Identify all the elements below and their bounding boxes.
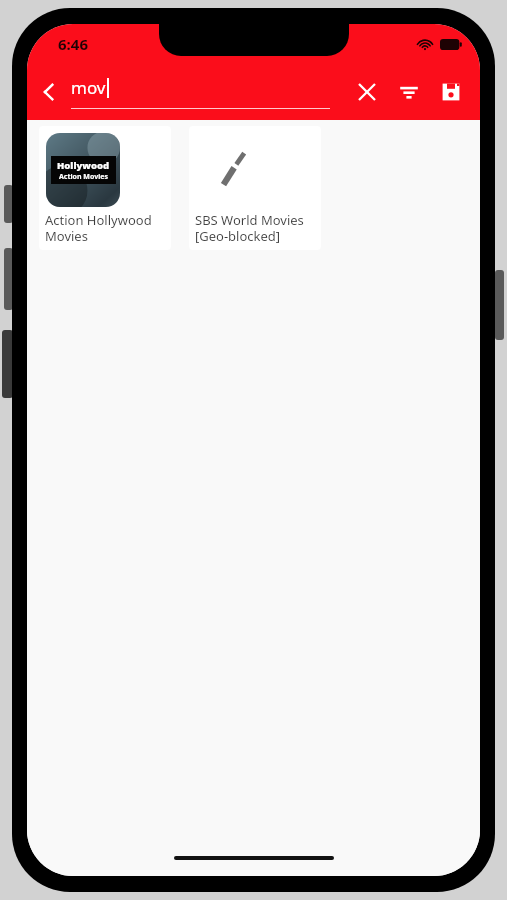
button[interactable]: Back xyxy=(27,70,71,114)
button[interactable]: Save xyxy=(430,71,472,113)
button[interactable]: Hollywood xyxy=(39,126,171,250)
button[interactable]: SBS World Movies [Geo-blocked] xyxy=(189,126,321,250)
staticText: mov xyxy=(71,76,106,99)
button[interactable]: Filter xyxy=(388,71,430,113)
staticText: Action Hollywood Movies xyxy=(45,211,167,244)
button[interactable]: Clear search xyxy=(346,71,388,113)
staticText: 6:46 xyxy=(58,34,88,54)
staticText: Hollywood xyxy=(57,159,110,172)
staticText: Action Movies xyxy=(59,172,108,182)
staticText: SBS World Movies [Geo-blocked] xyxy=(195,211,317,244)
button[interactable]: mov xyxy=(71,70,338,114)
